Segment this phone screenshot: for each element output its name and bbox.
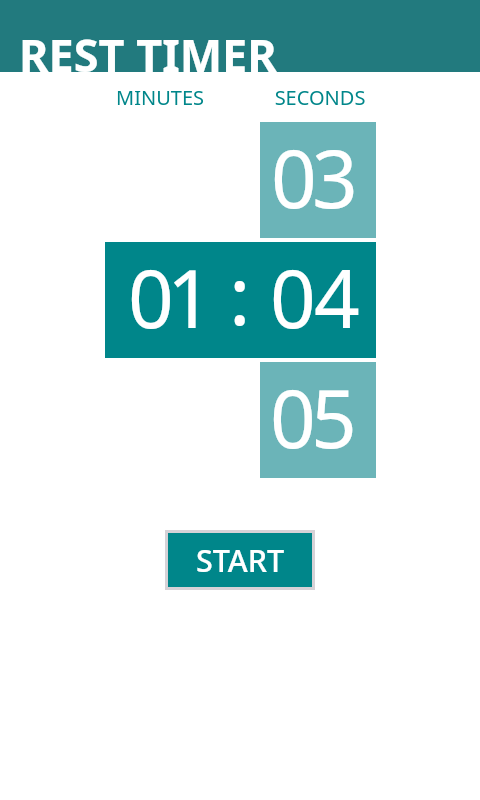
staticText: 1 [167,242,213,351]
button[interactable]: Seconds 03 [260,122,376,238]
button[interactable]: SECONDS [262,72,378,122]
staticText: 0 [271,122,317,231]
staticText: : [229,239,251,348]
staticText: 0 [270,242,316,351]
button[interactable]: MINUTES [102,72,218,122]
staticText: 0 [128,242,174,351]
button[interactable]: START [168,533,312,587]
staticText: 4 [314,242,360,351]
button[interactable]: Seconds 05 [260,362,376,478]
staticText: START [196,539,285,581]
button[interactable]: Selected time 01:04 [105,242,376,358]
staticText: 3 [312,122,358,231]
staticText: MINUTES [102,84,218,111]
staticText: 5 [311,362,357,471]
staticText: REST TIMER [19,24,277,85]
staticText: 0 [270,362,316,471]
staticText: SECONDS [262,84,378,111]
